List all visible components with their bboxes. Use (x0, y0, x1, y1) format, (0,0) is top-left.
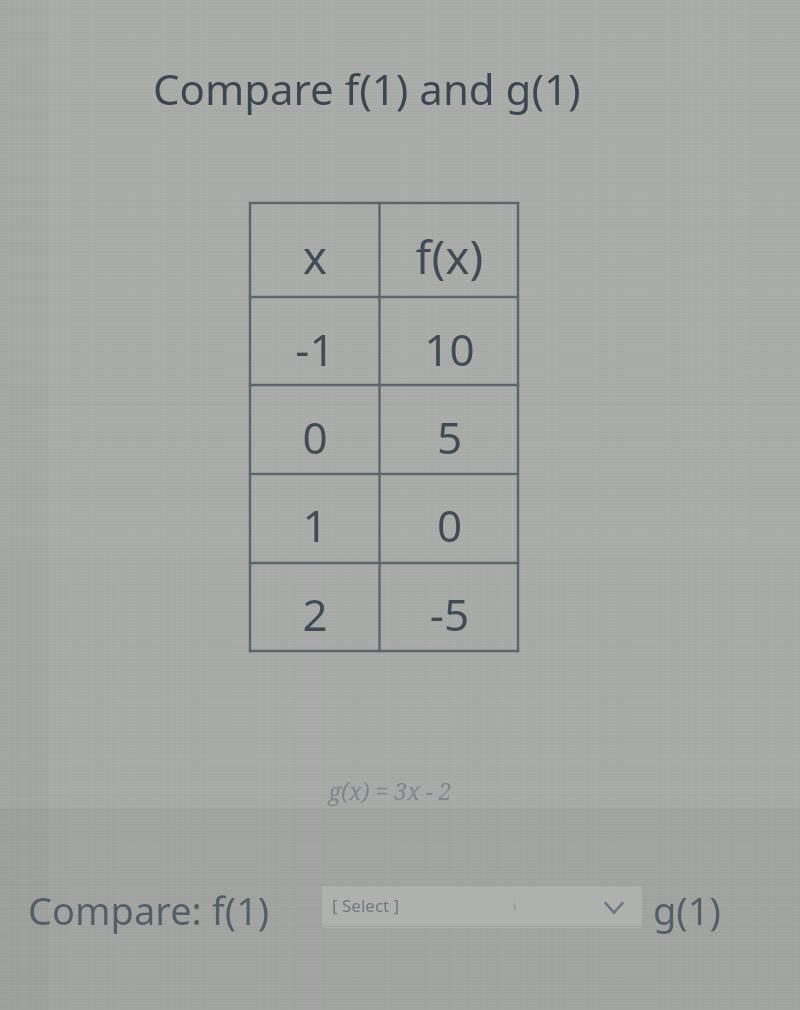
staticText: -1 (250, 319, 380, 376)
staticText: Compare f(1) and g(1) (153, 60, 581, 117)
staticText: [ Select ] (332, 894, 400, 917)
staticText: Compare: f(1) (28, 884, 270, 936)
staticText: x (250, 225, 380, 285)
button[interactable]: [ Select ] (322, 886, 642, 928)
staticText: 10 (380, 319, 519, 376)
staticText: 2 (250, 584, 380, 641)
staticText: 0 (250, 407, 380, 464)
staticText: -5 (380, 584, 519, 641)
staticText: g(1) (653, 884, 721, 936)
staticText: 1 (250, 495, 380, 552)
staticText: 0 (380, 495, 519, 552)
staticText: f(x) (380, 225, 519, 285)
staticText: g(x) = 3x − 2 (280, 775, 500, 815)
staticText: 5 (380, 407, 519, 464)
